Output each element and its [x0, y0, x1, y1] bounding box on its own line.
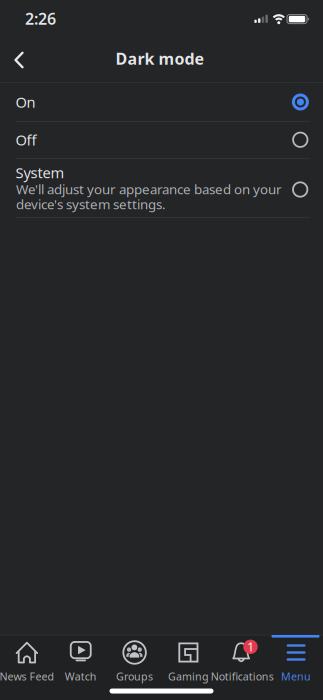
staticText: On	[15, 92, 35, 112]
button[interactable]: On	[0, 83, 323, 121]
button[interactable]: Watch	[54, 635, 108, 682]
staticText: 2:26	[25, 8, 56, 29]
staticText: Dark mode	[115, 48, 204, 69]
staticText: Notifications	[211, 669, 274, 683]
button[interactable]: Back	[3, 40, 35, 80]
button[interactable]: System	[0, 158, 323, 217]
button[interactable]: Groups	[108, 635, 161, 682]
button[interactable]: Menu	[269, 635, 323, 682]
staticText: device's system settings.	[16, 195, 166, 213]
button[interactable]: Gaming	[161, 635, 215, 682]
staticText: We'll adjust your appearance based on yo…	[16, 180, 282, 198]
staticText: Watch	[65, 669, 97, 683]
staticText: Menu	[281, 669, 311, 683]
staticText: Off	[15, 130, 36, 149]
staticText: 1	[247, 639, 254, 655]
staticText: System	[15, 163, 64, 182]
button[interactable]: Off	[0, 121, 323, 158]
staticText: Groups	[116, 669, 153, 683]
staticText: Gaming	[168, 669, 209, 683]
staticText: News Feed	[0, 669, 54, 683]
button[interactable]: News Feed	[0, 635, 54, 682]
button[interactable]: 1	[215, 635, 269, 682]
